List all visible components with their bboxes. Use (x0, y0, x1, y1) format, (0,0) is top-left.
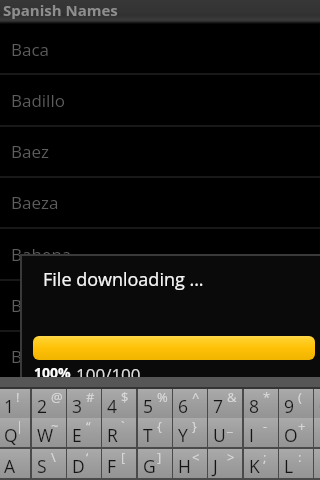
button[interactable]: ' (314, 449, 320, 478)
staticText: & (227, 388, 237, 406)
button[interactable]: A (0, 449, 30, 478)
staticText: ' (319, 454, 320, 478)
staticText: Balderas (11, 294, 81, 317)
button[interactable]: 2 (32, 389, 66, 418)
button[interactable]: 6 (173, 389, 207, 418)
button[interactable]: Bahena (0, 229, 320, 280)
staticText: P (319, 423, 320, 447)
button[interactable]: O (279, 418, 313, 447)
staticText: E (72, 423, 82, 447)
button[interactable]: H (173, 449, 207, 478)
staticText: : (298, 448, 302, 466)
button[interactable]: Y (173, 418, 207, 447)
button[interactable]: Badillo (0, 75, 320, 126)
staticText: * (263, 388, 271, 406)
staticText: Q (4, 423, 18, 447)
button[interactable]: 4 (102, 389, 136, 418)
staticText: K (249, 454, 260, 478)
staticText: W (37, 423, 54, 447)
staticText: ^ (192, 388, 200, 406)
staticText: H (178, 454, 191, 478)
button[interactable]: 0 (314, 389, 320, 418)
staticText: < (192, 448, 200, 466)
staticText: ~ (51, 417, 59, 435)
staticText: ; (263, 448, 267, 466)
staticText: Baez (11, 140, 49, 163)
staticText: ! (16, 388, 20, 406)
button[interactable]: R (102, 418, 136, 447)
staticText: 4 (107, 394, 118, 418)
button[interactable]: S (32, 449, 66, 478)
button[interactable]: K (244, 449, 278, 478)
staticText: ` (121, 417, 125, 435)
button[interactable]: 8 (244, 389, 278, 418)
button[interactable]: G (138, 449, 172, 478)
staticText: 6 (178, 394, 189, 418)
staticText: 2 (37, 394, 48, 418)
button[interactable]: T (138, 418, 172, 447)
staticText: J (213, 454, 218, 478)
staticText: @ (51, 388, 63, 406)
staticText: ] (157, 448, 162, 466)
staticText: S (37, 454, 47, 478)
staticText: ( (298, 388, 302, 406)
button[interactable]: I (244, 418, 278, 447)
staticText: File downloading ... (43, 267, 204, 292)
button[interactable]: Baca (0, 24, 320, 75)
staticText: 100/100 (76, 363, 141, 386)
staticText: “ (86, 417, 91, 435)
staticText: + (298, 417, 306, 435)
staticText: 0 (319, 394, 320, 418)
button[interactable]: Barajas (0, 331, 320, 382)
button[interactable]: Baez (0, 126, 320, 177)
staticText: I (249, 423, 254, 447)
staticText: D (72, 454, 85, 478)
button[interactable]: J (208, 449, 242, 478)
staticText: Badillo (11, 89, 65, 112)
staticText: G (143, 454, 156, 478)
button[interactable]: 7 (208, 389, 242, 418)
staticText: % (157, 388, 168, 406)
staticText: Y (178, 423, 188, 447)
button[interactable]: W (32, 418, 66, 447)
staticText: Spanish Names (3, 0, 118, 20)
button[interactable]: 1 (0, 389, 30, 418)
staticText: $ (121, 388, 129, 406)
staticText: 1 (4, 394, 15, 418)
button[interactable]: 9 (279, 389, 313, 418)
button[interactable]: 3 (67, 389, 101, 418)
staticText: 3 (72, 394, 83, 418)
staticText: > (227, 448, 235, 466)
button[interactable]: Q (0, 418, 30, 447)
staticText: { (157, 417, 162, 435)
button[interactable]: L (279, 449, 313, 478)
staticText: # (86, 388, 95, 406)
staticText: 7 (213, 394, 224, 418)
staticText: Bahena (11, 243, 72, 266)
staticText: O (284, 423, 298, 447)
staticText: } (192, 417, 197, 435)
button[interactable]: U (208, 418, 242, 447)
button[interactable]: D (67, 449, 101, 478)
staticText: 5 (143, 394, 154, 418)
button[interactable]: 5 (138, 389, 172, 418)
staticText: Baeza (11, 191, 59, 214)
button[interactable]: P (314, 418, 320, 447)
staticText: 9 (284, 394, 295, 418)
staticText: | (16, 417, 24, 435)
staticText: Baca (11, 38, 50, 61)
staticText: ‘ (86, 448, 89, 466)
staticText: 8 (249, 394, 260, 418)
staticText: Barajas (11, 345, 70, 368)
staticText: _ (227, 417, 233, 435)
button[interactable]: Baeza (0, 177, 320, 228)
button[interactable]: E (67, 418, 101, 447)
button[interactable]: F (102, 449, 136, 478)
staticText: L (284, 454, 294, 478)
staticText: A (4, 454, 16, 478)
staticText: U (213, 423, 226, 447)
staticText: R (107, 423, 118, 447)
staticText: F (107, 454, 117, 478)
button[interactable]: Balderas (0, 280, 320, 331)
staticText: \ (51, 448, 56, 466)
